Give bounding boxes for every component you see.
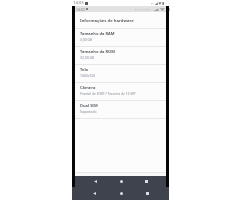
staticText: 32,00 GB (80, 55, 95, 60)
staticText: Tamanho da ROM (80, 49, 115, 54)
staticText: Frontal de 8 MP / Traseira de 13 MP (80, 91, 136, 96)
button[interactable]: Home (116, 176, 126, 186)
staticText: Tamanho da RAM (80, 31, 115, 36)
staticText: 1440x720 (80, 73, 96, 78)
button[interactable]: Tamanho da ROM (75, 47, 166, 64)
button[interactable]: Tela (75, 65, 166, 82)
button[interactable]: Tamanho da RAM (75, 29, 166, 46)
button[interactable]: Dual SIM (75, 101, 166, 118)
staticText: 14:03 (76, 7, 85, 12)
staticText: 14:03 (73, 0, 84, 6)
staticText: Dual SIM (80, 103, 98, 108)
staticText: Câmera (80, 85, 96, 90)
staticText: 3,00 GB (80, 37, 93, 42)
button[interactable]: Back (90, 176, 100, 186)
button[interactable]: Câmera (75, 83, 166, 100)
staticText: Suportado (80, 109, 97, 114)
button[interactable]: Back (89, 188, 99, 198)
staticText: Tela (80, 67, 89, 72)
button[interactable]: Recent apps (142, 188, 152, 198)
staticText: Informações de hardware (80, 18, 134, 24)
button[interactable]: Recent apps (141, 176, 151, 186)
button[interactable]: Home (116, 188, 126, 198)
